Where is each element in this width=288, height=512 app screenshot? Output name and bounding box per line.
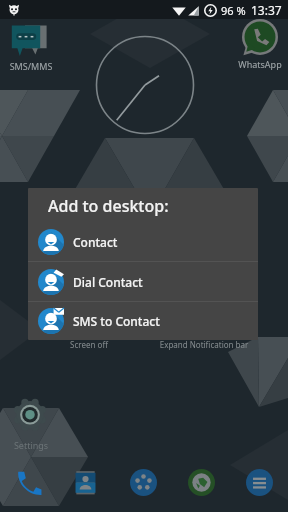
staticText: Expand Notification bar [146, 339, 262, 350]
button[interactable]: Menu [230, 454, 288, 512]
button[interactable]: Dial Contact [28, 262, 258, 301]
staticText: Screen off [60, 339, 118, 350]
staticText: Add to desktop: [48, 195, 169, 217]
staticText: Settings [3, 439, 59, 451]
button[interactable]: Contacts [57, 454, 114, 512]
staticText: 96 % [221, 3, 246, 18]
button[interactable]: WhatsApp [232, 20, 288, 56]
button[interactable]: SMS/MMS [3, 23, 59, 57]
staticText: SMS to Contact [73, 313, 160, 329]
button[interactable]: Settings [3, 398, 59, 436]
staticText: SMS/MMS [3, 60, 59, 72]
staticText: Dial Contact [73, 274, 143, 290]
staticText: 13:37 [251, 2, 282, 18]
staticText: Contact [73, 234, 118, 250]
staticText: WhatsApp [232, 58, 288, 70]
button[interactable]: Phone [0, 454, 57, 512]
button[interactable]: Apps [114, 454, 172, 512]
button[interactable]: Browser [172, 454, 230, 512]
button[interactable]: Contact [28, 222, 258, 261]
button[interactable]: SMS to Contact [28, 302, 258, 340]
